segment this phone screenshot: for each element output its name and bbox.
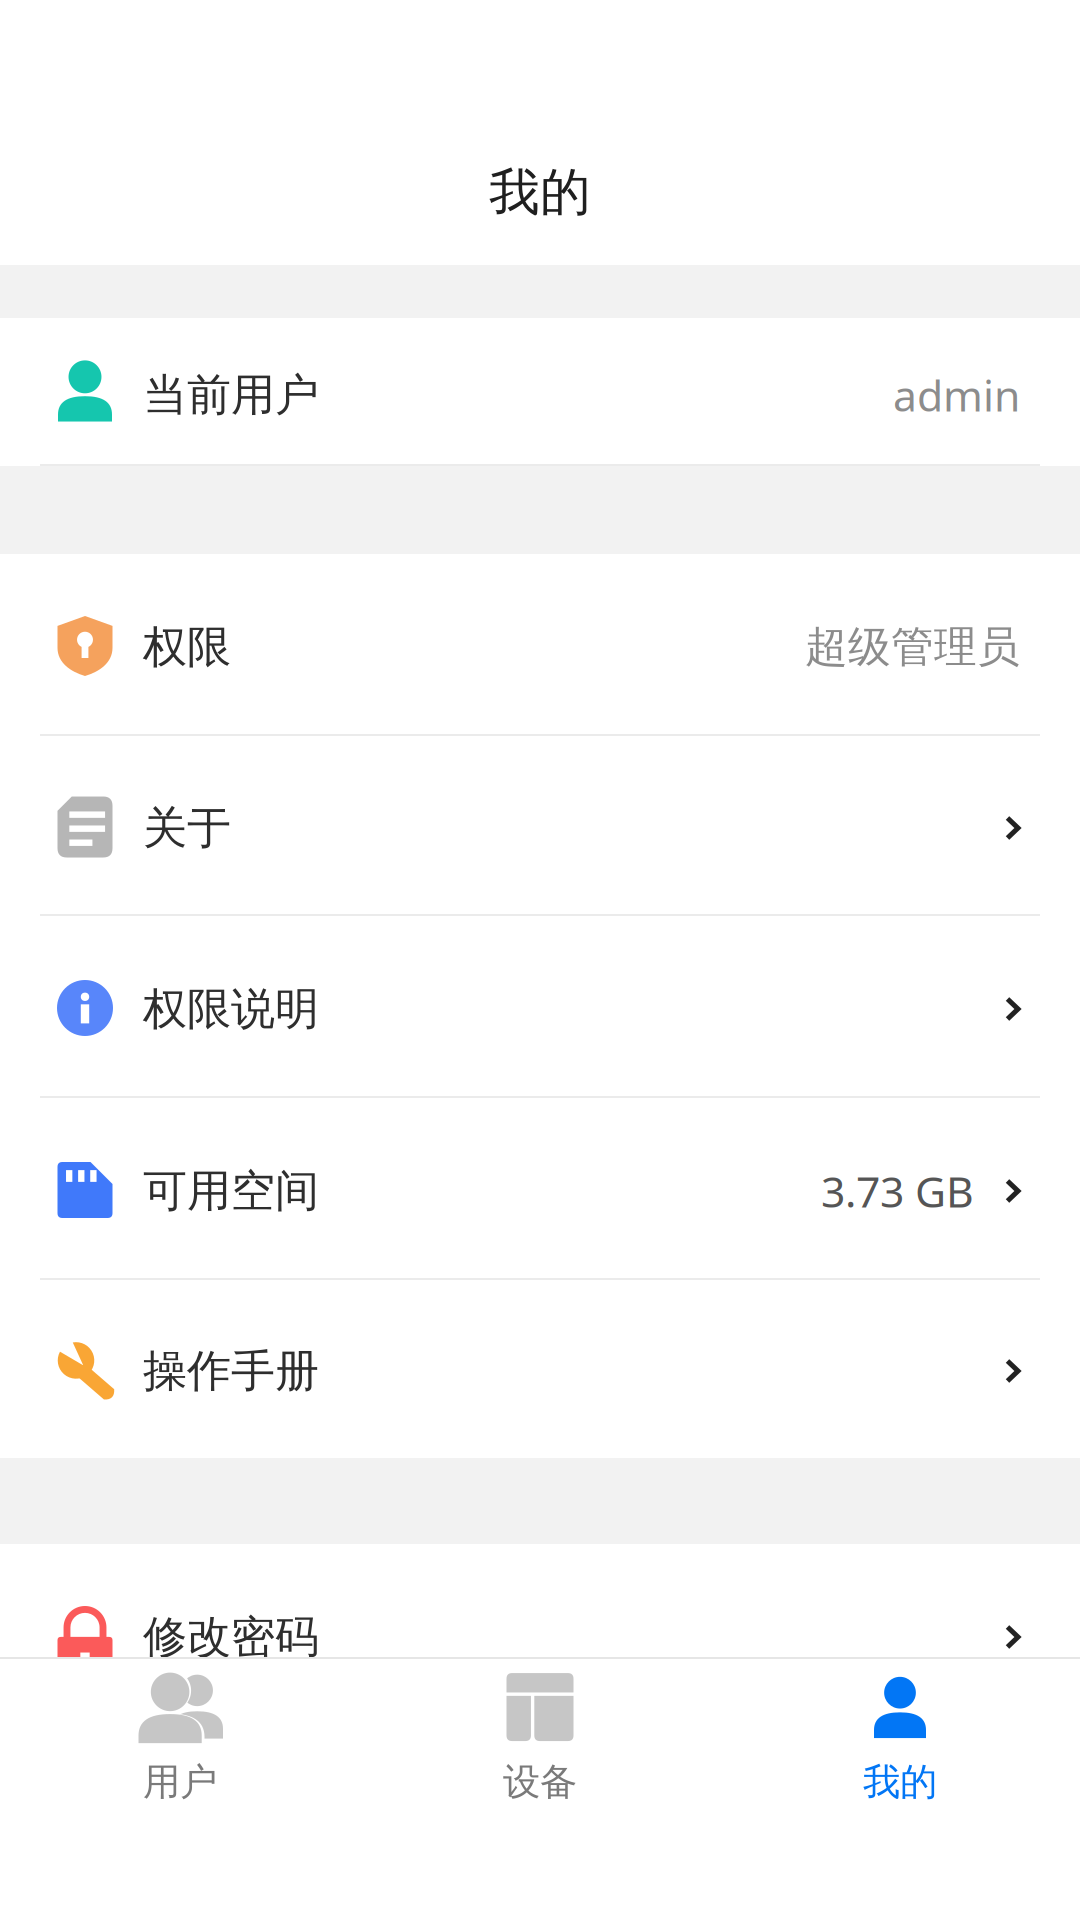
staticText: 我的: [863, 1759, 937, 1805]
button[interactable]: 权限: [0, 554, 1080, 736]
staticText: 用户: [143, 1759, 217, 1805]
staticText: 我的: [489, 161, 591, 224]
button[interactable]: 当前用户: [0, 318, 1080, 466]
button[interactable]: 设备: [360, 1652, 720, 1813]
staticText: 操作手册: [143, 1344, 319, 1398]
staticText: 可用空间: [143, 1164, 319, 1218]
button[interactable]: 关于: [0, 736, 1080, 916]
button[interactable]: 权限说明: [0, 916, 1080, 1098]
staticText: admin: [893, 367, 1020, 423]
button[interactable]: 用户: [0, 1652, 360, 1813]
staticText: 当前用户: [143, 368, 319, 422]
button[interactable]: 修改密码: [0, 1544, 1080, 1726]
button[interactable]: 我的: [720, 1652, 1080, 1813]
button[interactable]: 可用空间: [0, 1098, 1080, 1280]
staticText: 超级管理员: [805, 621, 1020, 673]
staticText: 关于: [143, 801, 231, 855]
button[interactable]: 操作手册: [0, 1280, 1080, 1458]
staticText: 权限说明: [143, 982, 319, 1036]
staticText: 权限: [143, 620, 231, 674]
staticText: 3.73 GB: [821, 1163, 974, 1219]
staticText: 设备: [503, 1759, 577, 1805]
staticText: 修改密码: [143, 1610, 319, 1664]
